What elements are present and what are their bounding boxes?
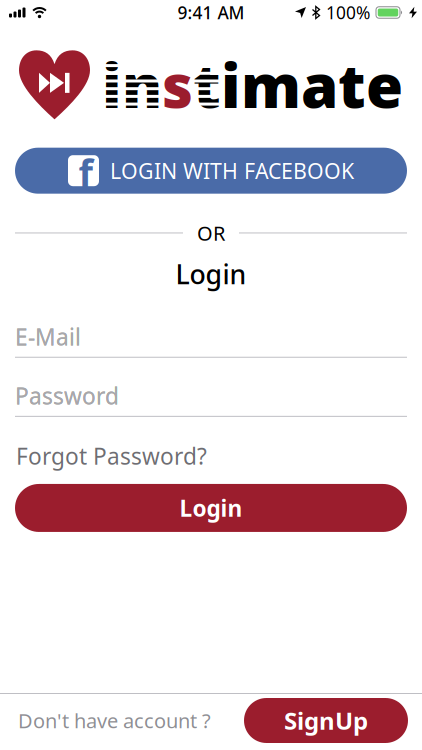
staticText: SignUp: [284, 705, 368, 736]
staticText: Login: [179, 493, 242, 523]
staticText: Forgot Password?: [16, 441, 207, 471]
button[interactable]: Login: [15, 484, 407, 532]
staticText: in: [102, 45, 162, 125]
staticText: imate: [221, 45, 403, 125]
staticText: E-Mail: [15, 322, 81, 352]
staticText: 100%: [326, 1, 370, 24]
textField[interactable]: Password: [15, 381, 407, 411]
staticText: LOGIN WITH FACEBOOK: [110, 156, 354, 185]
button[interactable]: SignUp: [244, 698, 408, 743]
staticText: OR: [197, 220, 225, 246]
staticText: 9:41 AM: [177, 1, 244, 24]
staticText: Password: [15, 381, 119, 411]
staticText: Login: [175, 256, 246, 292]
staticText: t: [193, 45, 221, 125]
staticText: E-Mail: [15, 322, 81, 352]
staticText: Don't have account ?: [18, 707, 211, 734]
staticText: s: [162, 45, 193, 125]
button[interactable]: f: [15, 148, 407, 194]
textField[interactable]: E-Mail: [15, 322, 407, 352]
staticText: Password: [15, 381, 119, 411]
button[interactable]: Forgot Password?: [16, 441, 406, 471]
staticText: f: [78, 148, 92, 197]
